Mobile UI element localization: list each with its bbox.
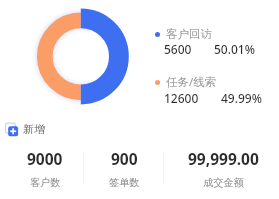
staticText: 签单数	[109, 176, 140, 188]
staticText: 任务/线索	[166, 74, 217, 90]
button[interactable]: 新增	[3, 121, 45, 137]
button[interactable]: 任务/线索	[155, 74, 253, 106]
staticText: 成交金额	[203, 176, 244, 188]
staticText: 客户数	[30, 176, 61, 188]
staticText: 12600	[164, 90, 199, 106]
staticText: 99,999.00	[188, 148, 259, 169]
button[interactable]: 客户回访	[155, 27, 246, 57]
staticText: 客户回访	[166, 27, 212, 41]
staticText: 9000	[27, 148, 63, 169]
staticText: 49.99%	[221, 90, 262, 106]
button[interactable]: 9000	[6, 148, 84, 188]
staticText: 50.01%	[214, 41, 255, 57]
staticText: 900	[111, 148, 138, 169]
staticText: 5600	[164, 41, 192, 57]
other: 新增	[3, 121, 19, 137]
button[interactable]: 99,999.00	[166, 148, 279, 188]
button[interactable]: 900	[84, 148, 164, 188]
staticText: 新增	[23, 122, 45, 136]
